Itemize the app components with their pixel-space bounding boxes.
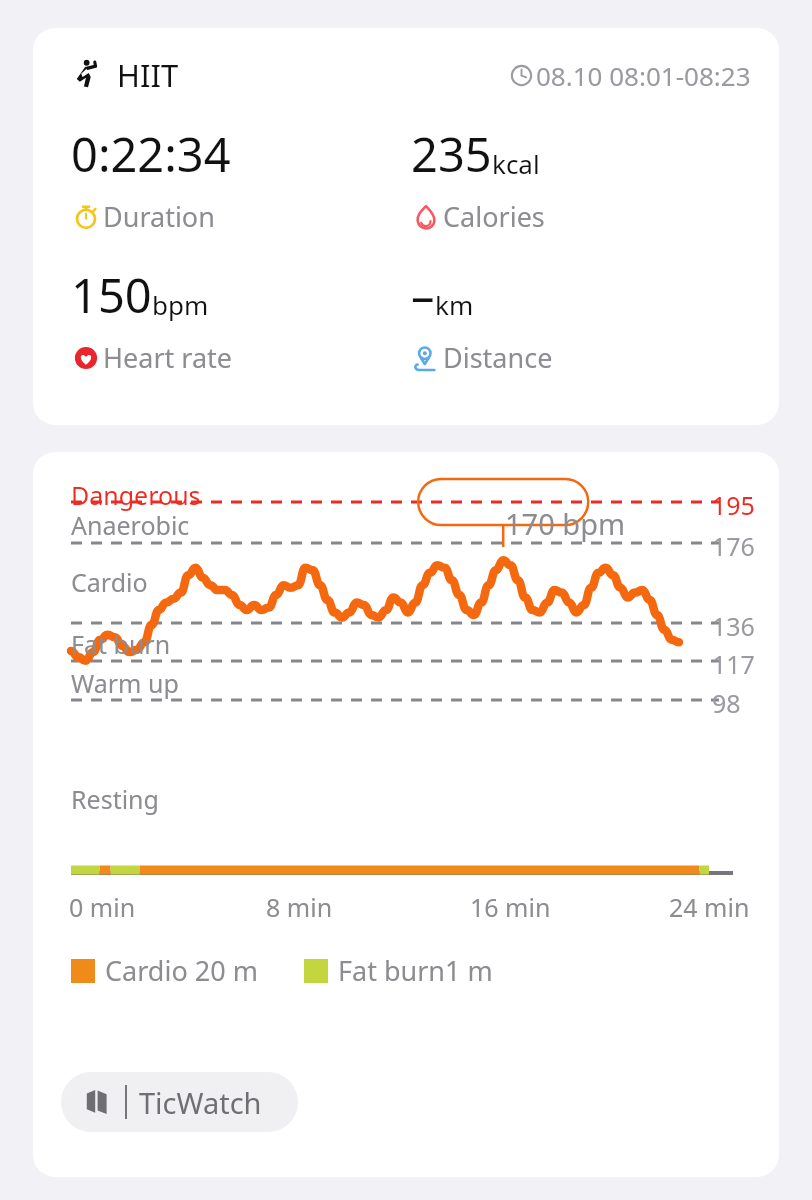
- staticText: Fat burn1 m: [338, 952, 493, 989]
- staticText: HIIT: [117, 54, 179, 96]
- staticText: Heart rate: [103, 339, 233, 376]
- staticText: 176: [712, 529, 755, 563]
- staticText: Resting: [71, 782, 159, 816]
- staticText: Dangerous: [71, 478, 201, 512]
- button[interactable]: Dangerous: [33, 452, 779, 1177]
- staticText: Distance: [443, 339, 553, 376]
- staticText: 24 min: [669, 890, 750, 924]
- staticText: 98: [712, 686, 741, 720]
- button[interactable]: HIIT: [33, 28, 779, 425]
- staticText: 235: [411, 122, 492, 186]
- staticText: 170 bpm: [505, 504, 626, 543]
- staticText: Anaerobic: [71, 508, 190, 542]
- staticText: Fat burn: [71, 627, 171, 661]
- staticText: bpm: [152, 287, 209, 322]
- staticText: 8 min: [266, 890, 333, 924]
- staticText: km: [435, 287, 474, 322]
- staticText: 0 min: [69, 890, 136, 924]
- staticText: 08.10 08:01-08:23: [536, 58, 751, 93]
- staticText: Cardio: [71, 565, 148, 599]
- staticText: –: [411, 263, 435, 327]
- staticText: 136: [712, 609, 755, 643]
- staticText: 16 min: [470, 890, 551, 924]
- staticText: TicWatch: [139, 1083, 262, 1122]
- staticText: kcal: [492, 146, 540, 181]
- staticText: Warm up: [71, 666, 179, 700]
- button[interactable]: TicWatch: [61, 1072, 298, 1132]
- staticText: 150: [71, 263, 152, 327]
- staticText: 117: [712, 647, 755, 681]
- staticText: 0:22:34: [71, 122, 231, 186]
- staticText: Duration: [103, 198, 215, 235]
- staticText: Calories: [443, 198, 545, 235]
- staticText: 195: [712, 488, 755, 522]
- staticText: Cardio 20 m: [105, 952, 258, 989]
